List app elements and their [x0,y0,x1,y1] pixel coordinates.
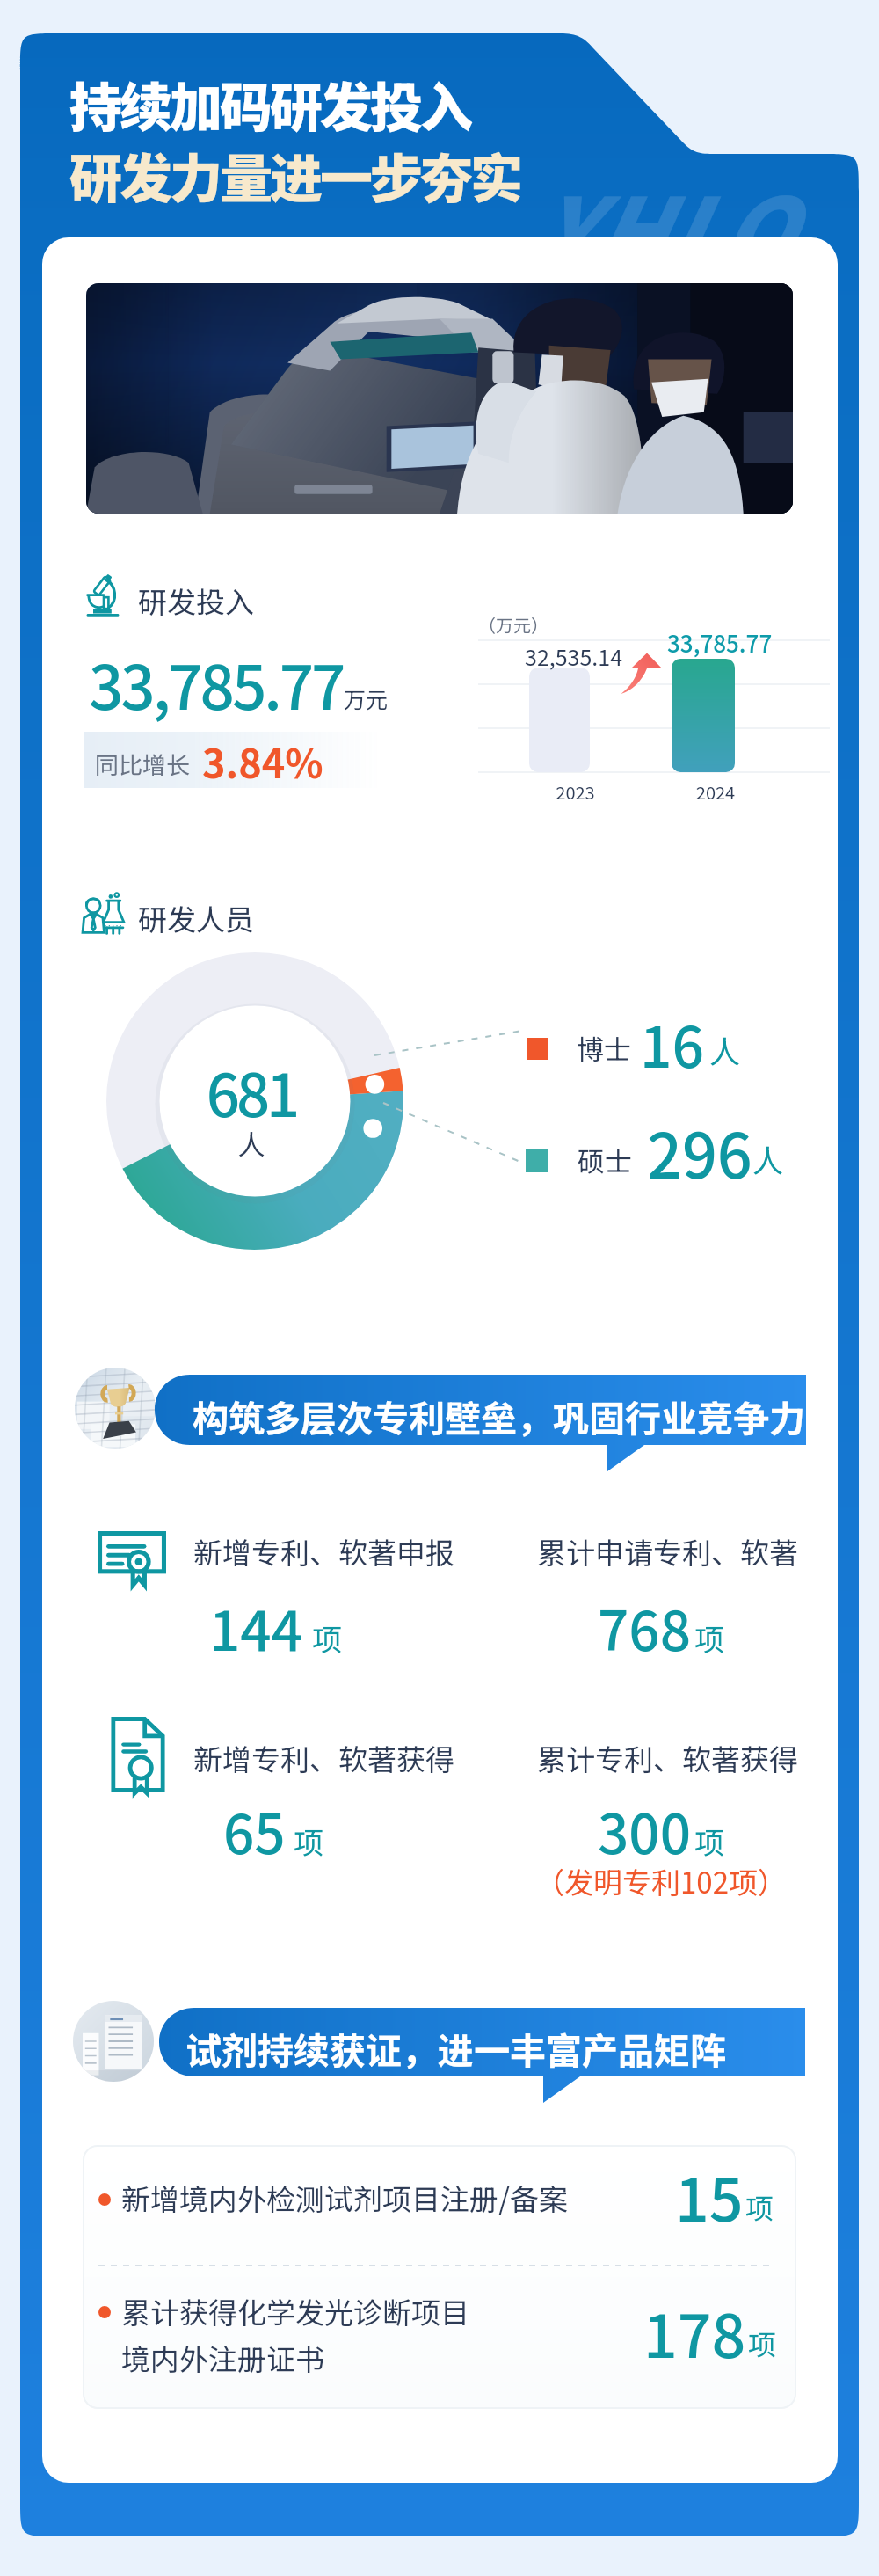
staticText: （万元） [478,612,548,638]
staticText: 博士 [577,1028,631,1068]
staticText: 万元 [344,682,389,714]
staticText: 硕士 [578,1140,632,1179]
staticText: 累计申请专利、软著 [537,1530,798,1573]
button[interactable]: 构筑多层次专利壁垒，巩固行业竞争力 [155,1375,806,1473]
staticText: 178 [643,2288,746,2375]
staticText: 同比增长 [95,747,190,781]
staticText: 人 [752,1136,784,1181]
staticText: 144 [209,1587,303,1667]
staticText: 新增专利、软著申报 [193,1530,454,1573]
staticText: 人 [709,1027,741,1072]
staticText: 65 [223,1791,286,1870]
staticText: 3.84% [202,733,323,790]
staticText: 300 [598,1791,692,1870]
staticText: 296 [647,1107,752,1196]
staticText: 768 [598,1587,692,1667]
staticText: 试剂持续获证，进一丰富产品矩阵 [185,2022,726,2074]
staticText: 人 [166,1123,337,1163]
staticText: 累计专利、软著获得 [537,1737,798,1779]
staticText: 项 [694,1616,724,1660]
staticText: 2024 [684,779,747,805]
staticText: 项 [745,2186,774,2227]
staticText: 33,785.77 [89,639,344,727]
staticText: 累计获得化学发光诊断项目 境内外注册证书 [121,2290,469,2379]
staticText: 2023 [545,779,606,805]
staticText: 项 [748,2323,777,2363]
staticText: 32,535.14 [525,640,623,672]
staticText: 构筑多层次专利壁垒，巩固行业竞争力 [193,1390,805,1441]
staticText: （发明专利102项） [535,1860,787,1902]
staticText: 681 [166,1048,337,1134]
staticText: 新增专利、软著获得 [193,1737,454,1779]
staticText: 持续加码研发投入 [69,65,470,142]
staticText: 新增境内外检测试剂项目注册/备案 [121,2177,568,2219]
staticText: 项 [694,1820,724,1863]
button[interactable]: 试剂持续获证，进一丰富产品矩阵 [159,2008,805,2105]
staticText: YHLO [534,158,794,291]
staticText: 研发人员 [138,897,254,939]
staticText: 33,785.77 [667,626,773,660]
staticText: 研发投入 [138,580,254,622]
staticText: 15 [675,2152,744,2238]
staticText: 16 [640,1003,704,1084]
staticText: 研发力量进一步夯实 [69,136,520,213]
staticText: 项 [294,1820,323,1863]
staticText: 项 [312,1616,342,1660]
